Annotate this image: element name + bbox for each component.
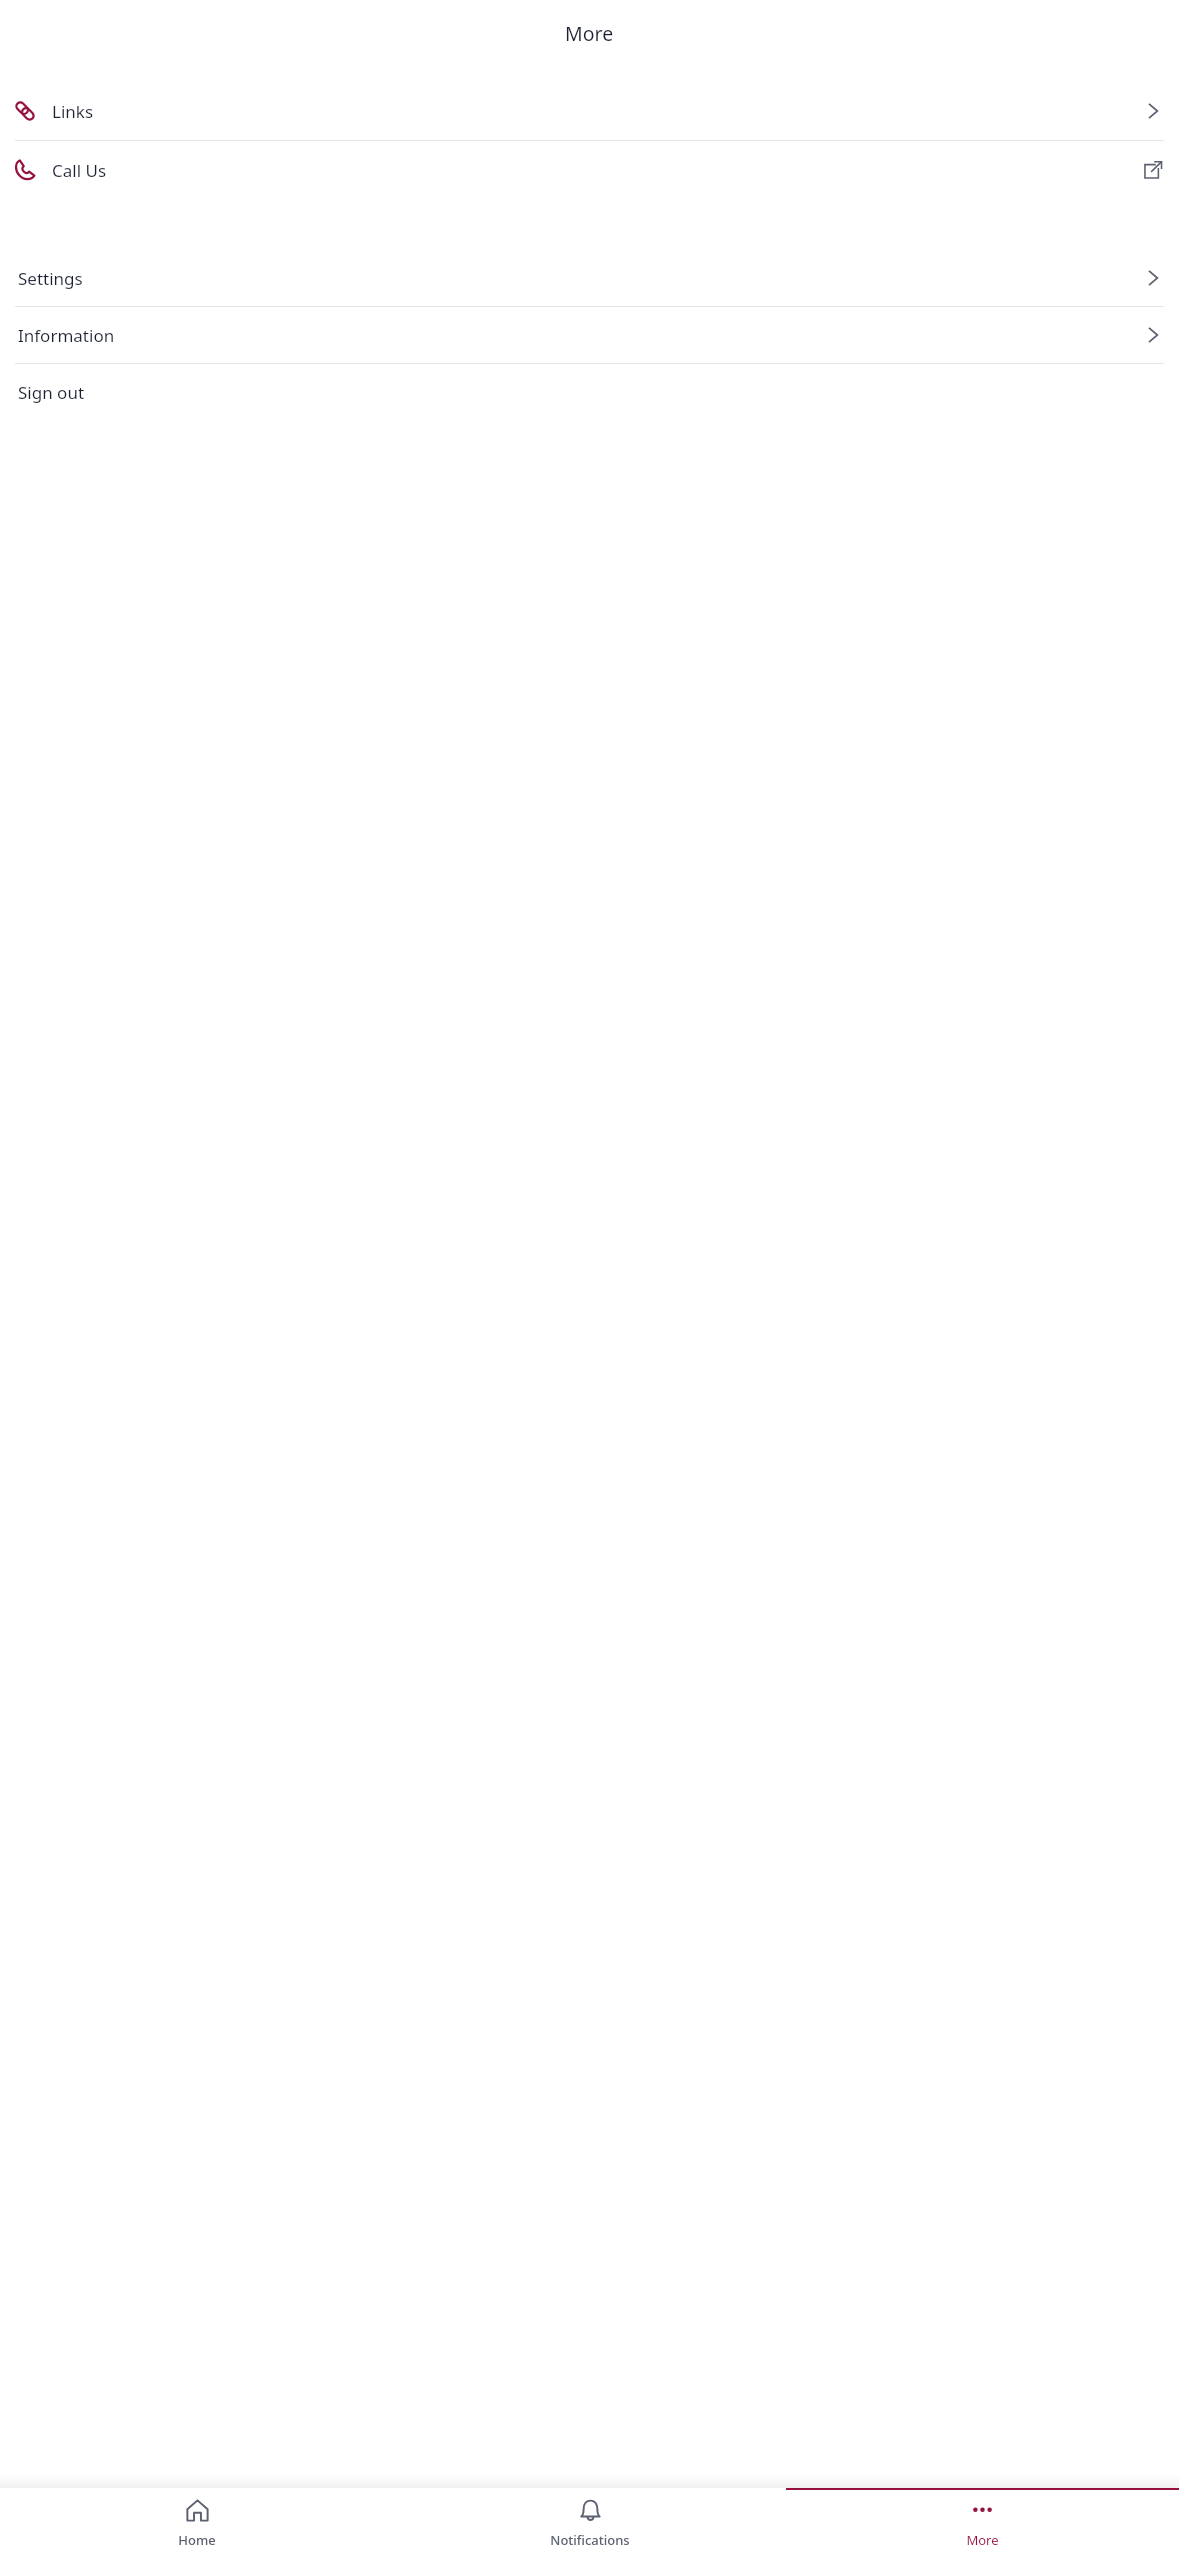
button[interactable]: Information [0,313,1179,357]
staticText: Links [52,100,94,123]
staticText: More [565,20,614,47]
staticText: Information [18,324,115,347]
button[interactable]: Links [0,87,1179,135]
other: Open Links [1143,101,1163,121]
button[interactable]: Sign out [0,370,1179,414]
staticText: More [966,2531,999,2549]
button[interactable]: Call Us [0,146,1179,194]
button[interactable]: Settings [0,256,1179,300]
other: Open Settings [1143,268,1163,288]
staticText: Settings [18,267,83,290]
staticText: Home [178,2531,216,2549]
button[interactable]: Notifications [393,2488,786,2553]
staticText: Call Us [52,159,107,182]
staticText: Sign out [18,381,85,404]
staticText: Notifications [550,2531,630,2549]
button[interactable]: Home [0,2488,393,2553]
other: Open Information [1143,325,1163,345]
other: Call Us, opens external app [1142,160,1163,181]
button[interactable]: More [786,2488,1179,2553]
